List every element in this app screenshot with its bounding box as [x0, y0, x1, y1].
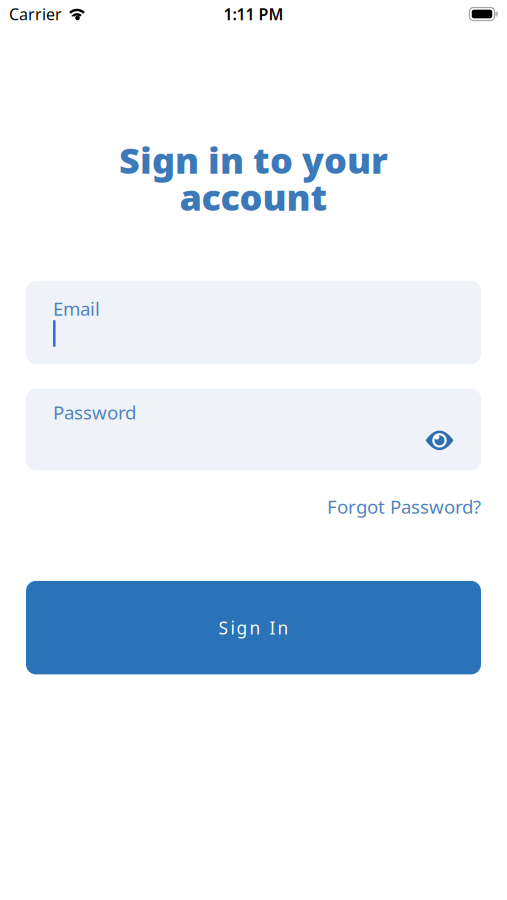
staticText: Password — [53, 400, 136, 425]
staticText: account — [179, 173, 327, 221]
staticText: 1:11 PM — [223, 3, 283, 25]
button[interactable]: Show password — [425, 430, 454, 450]
button[interactable]: Forgot Password? — [327, 494, 481, 519]
button[interactable]: Password — [26, 389, 481, 470]
staticText: Forgot Password? — [327, 494, 481, 519]
staticText: Carrier — [9, 3, 62, 25]
staticText: Sign in to your — [119, 136, 388, 184]
button[interactable]: Email — [26, 281, 481, 364]
staticText: Email — [53, 296, 100, 321]
staticText: Sign In — [218, 616, 288, 639]
button[interactable]: Sign In — [26, 581, 481, 674]
